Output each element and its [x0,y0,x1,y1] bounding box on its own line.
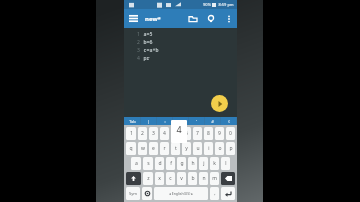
button[interactable]: g [177,157,186,170]
button[interactable]: 8 [204,127,213,140]
button[interactable]: r [160,142,169,155]
staticText: u [196,145,200,152]
button[interactable]: | [141,117,156,125]
button[interactable]: o [215,142,224,155]
button[interactable]: i [204,142,213,155]
staticText: s [147,160,150,167]
button[interactable]: Open navigation drawer [124,9,143,28]
button[interactable]: f [166,157,175,170]
staticText: : [164,119,166,124]
staticText: pr [143,55,150,62]
button[interactable]: t [171,142,180,155]
staticText: 3 [137,47,140,54]
staticText: new* [145,15,161,23]
button[interactable]: Hints [202,10,220,28]
button[interactable]: " [173,117,188,125]
button[interactable]: 6 [182,127,191,140]
button[interactable]: d [155,157,164,170]
staticText: 4 [163,130,166,137]
button[interactable]: Enter [221,187,235,200]
staticText: z [147,175,150,182]
staticText: 4 [176,123,182,135]
staticText: 0 [229,130,232,137]
button[interactable]: q [126,142,136,155]
button[interactable]: l [221,157,230,170]
staticText: 3 [152,130,155,137]
button[interactable]: x [155,172,164,185]
staticText: Tab [129,119,136,124]
button[interactable]: p [226,142,235,155]
staticText: l [225,160,227,167]
staticText: a [135,160,138,167]
button[interactable]: z [143,172,153,185]
button[interactable]: c [166,172,175,185]
staticText: ' [196,119,197,124]
staticText: o [218,145,222,152]
staticText: c [169,175,172,182]
staticText: n [202,175,206,182]
button[interactable]: ( [221,117,236,125]
staticText: b [191,175,195,182]
staticText: c=a+b [143,47,159,54]
staticText: t [175,145,177,152]
button[interactable]: h [188,157,197,170]
staticText: d [158,160,162,167]
button[interactable]: ' [189,117,204,125]
button[interactable]: More options [220,10,237,27]
staticText: ◂ English(US) ▸ [169,191,193,196]
staticText: f [170,160,172,167]
button[interactable]: m [210,172,219,185]
staticText: 2 [137,39,140,46]
staticText: 8:59 pm [218,2,234,7]
button[interactable]: Backspace [221,172,235,185]
button[interactable]: 0 [226,127,235,140]
button[interactable]: 5 [171,127,180,140]
button[interactable]: u [193,142,202,155]
button[interactable]: 2 [138,127,147,140]
button[interactable]: y [182,142,191,155]
staticText: 9 [218,130,221,137]
button[interactable]: e [149,142,158,155]
staticText: 2 [141,130,144,137]
staticText: " [180,119,182,124]
staticText: r [163,145,166,152]
button[interactable]: ◂ English(US) ▸ [154,187,208,200]
button[interactable]: v [177,172,186,185]
staticText: 4 [137,55,140,62]
button[interactable]: Shift [126,172,141,185]
button[interactable]: 1 [126,127,136,140]
button[interactable]: 4 [160,127,169,140]
button[interactable]: Keyboard settings [142,187,152,200]
button[interactable]: 7 [193,127,202,140]
button[interactable]: s [143,157,153,170]
button[interactable]: 9 [215,127,224,140]
staticText: Sym [129,191,137,196]
button[interactable]: Sym [126,187,140,200]
button[interactable]: Open file [184,10,202,28]
staticText: 5 [174,130,177,137]
staticText: e [152,145,155,152]
button[interactable]: w [138,142,147,155]
staticText: , [214,190,216,197]
staticText: # [211,119,214,124]
button[interactable]: 3 [149,127,158,140]
button[interactable]: Run [211,95,228,112]
staticText: j [203,160,205,167]
staticText: i [208,145,210,152]
button[interactable]: j [199,157,208,170]
staticText: g [180,160,184,167]
button[interactable]: Tab [124,117,140,125]
staticText: ( [228,119,230,124]
button[interactable]: b [188,172,197,185]
staticText: q [129,145,133,152]
button[interactable]: k [210,157,219,170]
staticText: w [141,145,145,152]
button[interactable]: a [131,157,141,170]
staticText: k [213,160,216,167]
button[interactable]: n [199,172,208,185]
staticText: p [229,145,233,152]
button[interactable]: # [205,117,220,125]
button[interactable]: : [157,117,172,125]
staticText: 1 [137,31,140,38]
button[interactable]: , [210,187,219,200]
